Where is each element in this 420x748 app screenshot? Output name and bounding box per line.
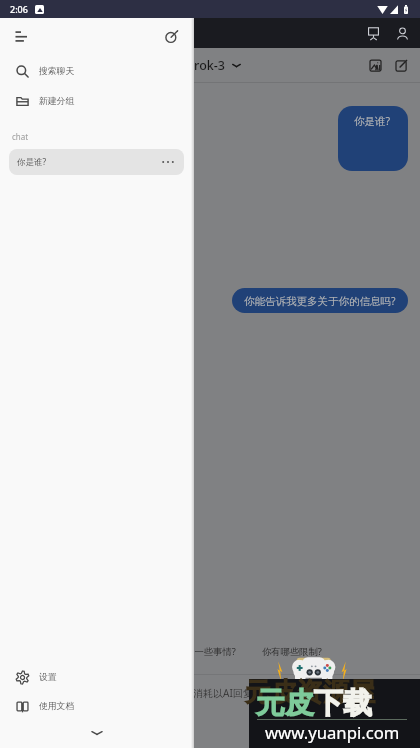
staticText: www.yuanpi.com [265,721,400,744]
staticText: 搜索聊天 [39,66,75,77]
button[interactable]: Profile [389,20,415,46]
button[interactable]: New chat [157,22,185,50]
staticText: chat [12,131,29,142]
staticText: 元皮资源屋 [245,676,375,709]
button[interactable]: 你是谁? [9,149,184,175]
staticText: 设置 [39,672,57,683]
staticText: Grok-3 [185,57,225,74]
staticText: 你是谁? [354,114,391,128]
button[interactable]: Collapse [83,721,111,745]
button[interactable]: AI image [363,53,387,77]
button[interactable]: 新建分组 [0,86,194,116]
staticText: 新建分组 [39,96,75,107]
staticText: 下载 [314,685,372,722]
button[interactable]: 搜索聊天 [0,56,194,86]
button[interactable]: 使用文档 [0,691,194,721]
button[interactable]: New chat [389,53,413,77]
staticText: 元皮 [256,685,314,722]
staticText: 2:06 [10,3,28,15]
button[interactable]: Menu [7,22,35,50]
staticText: 消耗以AI回复 [193,686,253,700]
staticText: 讲讲有趣的一些事情? [148,645,236,658]
staticText: 你有哪些限制? [262,645,322,658]
button[interactable]: Grok-3 [185,57,241,74]
button[interactable]: 设置 [0,662,194,692]
staticText: 你是谁? [17,156,47,168]
staticText: 你能告诉我更多关于你的信息吗? [244,294,396,308]
staticText: 使用文档 [39,701,75,712]
button[interactable]: Whiteboard [360,20,386,46]
